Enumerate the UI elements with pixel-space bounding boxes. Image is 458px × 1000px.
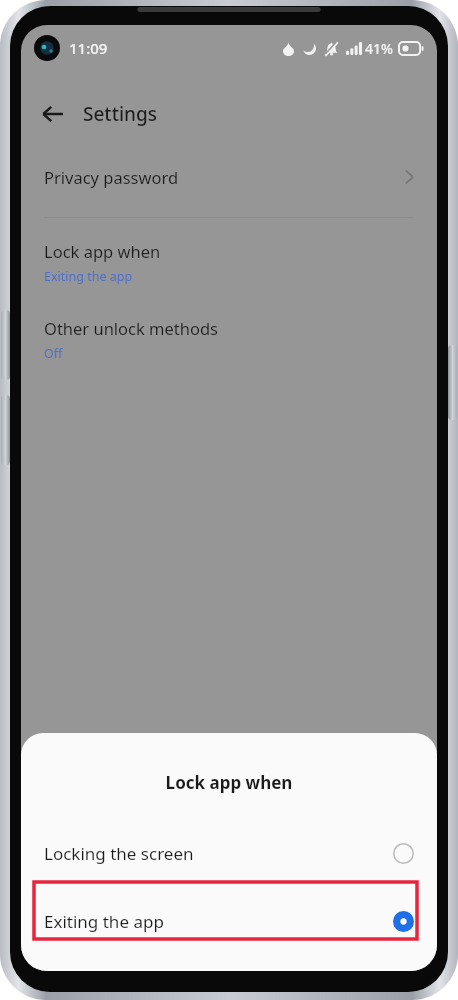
- staticText: 41%: [365, 39, 393, 58]
- staticText: Privacy password: [44, 166, 179, 188]
- staticText: Lock app when: [21, 771, 437, 794]
- staticText: Off: [44, 345, 63, 362]
- staticText: Locking the screen: [44, 842, 194, 865]
- button[interactable]: Other unlock methods: [21, 317, 437, 362]
- staticText: Exiting the app: [44, 910, 164, 933]
- button[interactable]: Exiting the app: [21, 890, 437, 952]
- staticText: Settings: [83, 101, 157, 127]
- staticText: 11:09: [69, 38, 108, 58]
- button[interactable]: Locking the screen: [21, 822, 437, 884]
- staticText: Lock app when: [44, 240, 161, 262]
- staticText: Exiting the app: [44, 268, 133, 285]
- button[interactable]: Privacy password: [21, 157, 437, 197]
- button[interactable]: Back: [35, 96, 71, 132]
- staticText: Other unlock methods: [44, 317, 219, 339]
- button[interactable]: Lock app when: [21, 240, 437, 285]
